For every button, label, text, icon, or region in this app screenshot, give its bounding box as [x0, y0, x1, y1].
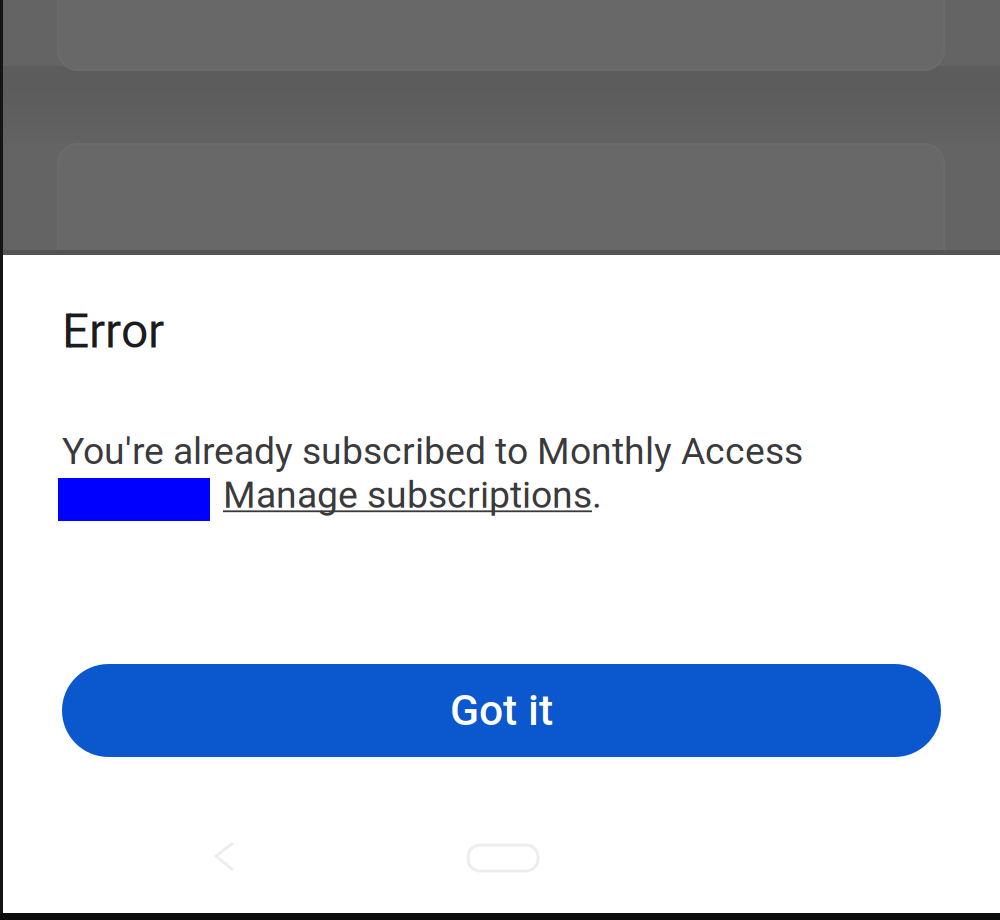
button[interactable]: Manage subscriptions. [223, 473, 602, 517]
button[interactable]: Home [468, 845, 538, 871]
staticText: Manage subscriptions. [223, 473, 602, 517]
staticText: Error [62, 303, 164, 359]
button[interactable]: Back [208, 838, 242, 878]
staticText: Got it [450, 685, 553, 735]
staticText: You're already subscribed to Monthly Acc… [62, 429, 803, 473]
button[interactable]: Got it [62, 664, 941, 757]
